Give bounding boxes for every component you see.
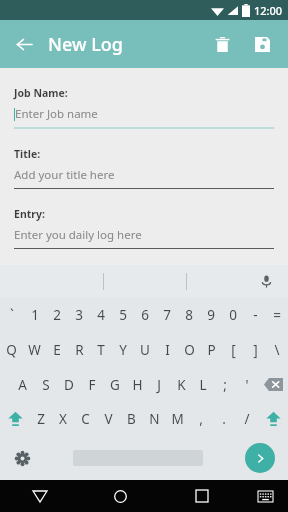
staticText: 9 [207,306,215,324]
button[interactable]: 1 [23,297,46,332]
staticText: E [53,341,61,359]
button[interactable]: Entry: [0,207,288,249]
button[interactable]: X [52,402,74,436]
staticText: , [199,410,203,428]
staticText: Y [119,341,127,359]
button[interactable]: [ [222,332,244,367]
staticText: 0 [229,306,237,324]
button[interactable]: Q [0,332,23,367]
staticText: Enter Job name [15,106,98,122]
staticText: P [207,341,216,359]
button[interactable]: ' [236,367,258,402]
staticText: Enter you daily log here [14,227,142,243]
staticText: M [171,410,184,428]
button[interactable]: 8 [178,297,200,332]
button[interactable]: = [266,297,288,332]
button[interactable]: Back [7,27,41,61]
staticText: Title: [14,147,41,161]
staticText: N [149,410,160,428]
button[interactable]: V [97,402,120,436]
button[interactable]: . [212,402,235,436]
button[interactable]: 4 [90,297,112,332]
button[interactable]: L [192,367,214,402]
button[interactable]: ] [244,332,266,367]
button[interactable]: C [74,402,97,436]
staticText: X [59,410,67,428]
button[interactable]: N [143,402,166,436]
button[interactable]: 6 [134,297,156,332]
staticText: 5 [119,306,127,324]
button[interactable]: Shift [258,402,288,436]
staticText: = [273,306,281,324]
staticText: ' [245,376,249,394]
button[interactable]: Job Name: [0,86,288,129]
button[interactable]: J [148,367,170,402]
staticText: D [64,376,74,394]
button[interactable]: K [170,367,192,402]
button[interactable]: G [103,367,126,402]
button[interactable]: O [178,332,200,367]
button[interactable]: A [11,367,34,402]
staticText: G [110,376,120,394]
button[interactable]: P [200,332,222,367]
staticText: Entry: [14,207,45,221]
staticText: ] [253,341,258,359]
button[interactable]: U [134,332,156,367]
button[interactable]: Home [80,480,161,512]
button[interactable]: Voice input [254,269,278,293]
button[interactable]: Shift [0,402,30,436]
button[interactable]: ` [0,297,23,332]
button[interactable]: Backspace [258,367,288,402]
staticText: K [177,376,186,394]
button[interactable]: R [68,332,90,367]
button[interactable]: D [57,367,80,402]
staticText: . [222,410,226,428]
staticText: 12:00 [254,3,283,18]
button[interactable]: W [23,332,46,367]
staticText: [ [231,341,236,359]
button[interactable]: Settings [0,436,44,480]
button[interactable]: S [34,367,57,402]
button[interactable]: M [166,402,189,436]
button[interactable]: \ [266,332,288,367]
button[interactable]: 7 [156,297,178,332]
button[interactable]: H [126,367,148,402]
button[interactable]: T [90,332,112,367]
staticText: 1 [31,306,39,324]
staticText: U [140,341,150,359]
staticText: Job Name: [14,86,68,100]
staticText: ` [10,306,14,324]
button[interactable]: - [244,297,266,332]
button[interactable]: F [80,367,103,402]
button[interactable]: Delete [202,24,242,64]
staticText: 7 [163,306,171,324]
button[interactable]: Switch keyboard [242,480,288,512]
button[interactable]: 3 [68,297,90,332]
button[interactable]: Recent apps [161,480,242,512]
button[interactable]: Enter [245,443,275,473]
staticText: V [104,410,113,428]
button[interactable]: / [235,402,258,436]
button[interactable]: 0 [222,297,244,332]
staticText: \ [274,341,280,359]
button[interactable]: Y [112,332,134,367]
button[interactable]: 9 [200,297,222,332]
staticText: I [165,341,170,359]
staticText: J [157,376,161,394]
staticText: ; [223,376,227,394]
button[interactable]: , [189,402,212,436]
button[interactable]: B [120,402,143,436]
staticText: S [42,376,50,394]
button[interactable]: E [46,332,68,367]
button[interactable]: Save [242,24,282,64]
button[interactable]: Back [0,480,80,512]
staticText: - [253,306,258,324]
staticText: New Log [48,32,123,57]
button[interactable]: Z [30,402,52,436]
button[interactable]: ; [214,367,236,402]
button[interactable]: Title: [0,147,288,189]
button[interactable]: 5 [112,297,134,332]
button[interactable]: I [156,332,178,367]
button[interactable]: 2 [46,297,68,332]
